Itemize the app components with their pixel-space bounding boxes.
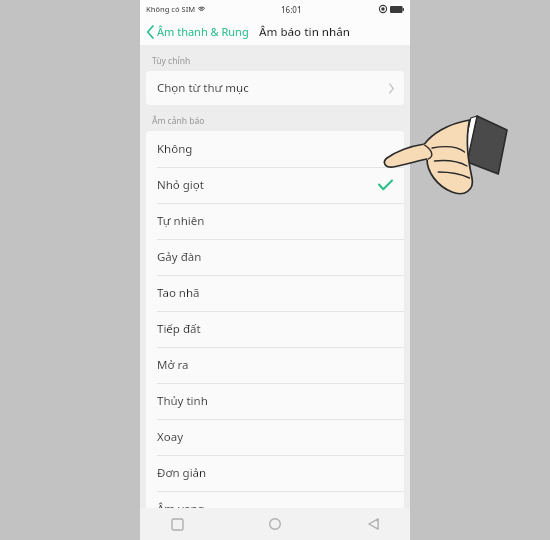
button[interactable]: Thủy tinh	[146, 383, 404, 419]
button[interactable]: Gảy đàn	[146, 239, 404, 275]
button[interactable]: Âm vang	[146, 491, 404, 527]
button[interactable]: Mở ra	[146, 347, 404, 383]
button[interactable]: Chọn từ thư mục	[146, 71, 404, 105]
staticText: Âm báo tin nhắn	[259, 24, 351, 40]
button[interactable]: Nhỏ giọt	[146, 167, 404, 203]
button[interactable]: Xoay	[146, 419, 404, 455]
staticText: Tùy chỉnh	[152, 55, 191, 67]
staticText: Nhỏ giọt	[157, 177, 204, 193]
staticText: Mở ra	[157, 357, 189, 373]
staticText: Âm cảnh báo	[152, 115, 205, 127]
button[interactable]: Recent apps	[162, 509, 192, 539]
staticText: Không	[157, 141, 193, 157]
staticText: Âm vang	[157, 501, 205, 517]
button[interactable]: Tiếp đất	[146, 311, 404, 347]
button[interactable]: Tự nhiên	[146, 203, 404, 239]
staticText: 16:01	[281, 4, 302, 15]
staticText: Tự nhiên	[157, 213, 205, 229]
button[interactable]: Không	[146, 131, 404, 167]
staticText: Âm thanh & Rung	[157, 24, 249, 39]
staticText: Tiếp đất	[157, 321, 201, 337]
button[interactable]: Home	[260, 509, 290, 539]
staticText: Xoay	[157, 429, 184, 445]
staticText: Chọn từ thư mục	[157, 80, 249, 96]
button[interactable]: Đơn giản	[146, 455, 404, 491]
button[interactable]: Back	[358, 509, 388, 539]
staticText: Đơn giản	[157, 465, 207, 481]
button[interactable]: Âm thanh & Rung	[140, 20, 253, 43]
staticText: Không có SIM	[146, 4, 196, 14]
staticText: Thủy tinh	[157, 393, 208, 409]
staticText: Gảy đàn	[157, 249, 202, 265]
button[interactable]: Tao nhã	[146, 275, 404, 311]
staticText: Tao nhã	[157, 285, 200, 301]
